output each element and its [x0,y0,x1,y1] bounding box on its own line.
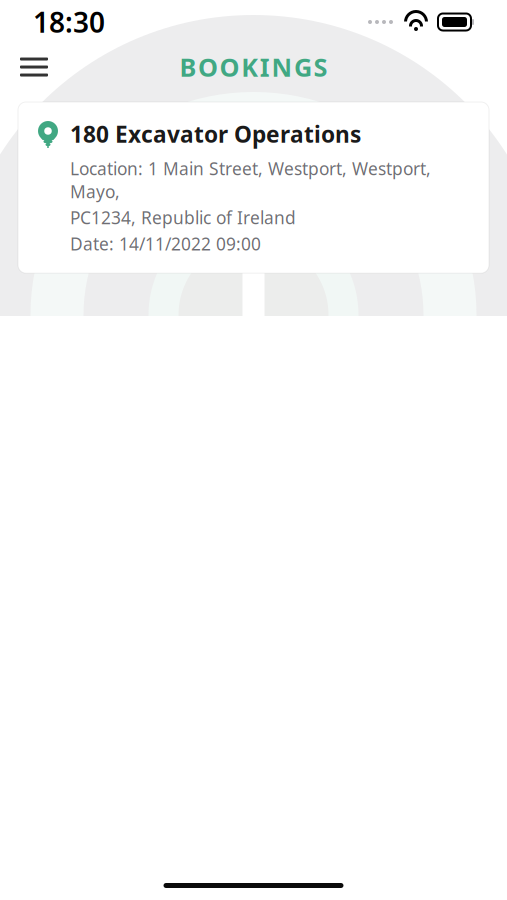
staticText: BOOKINGS [179,50,328,84]
staticText: PC1234, Republic of Ireland [70,206,296,229]
button[interactable]: 180 Excavator Operations [18,102,489,273]
staticText: Date: 14/11/2022 09:00 [70,232,261,255]
staticText: Location: 1 Main Street, Westport, Westp… [70,157,431,203]
button[interactable]: Menu [9,47,59,86]
staticText: 18:30 [33,3,105,41]
staticText: 180 Excavator Operations [70,119,361,149]
